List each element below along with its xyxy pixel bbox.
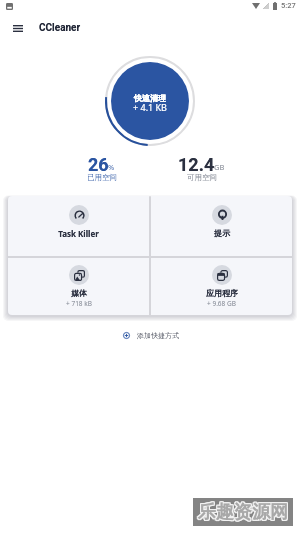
staticText: 乐趣资源网 — [197, 502, 287, 525]
staticText: 乐趣资源网 — [199, 501, 289, 524]
staticText: 媒体 — [71, 288, 87, 298]
staticText: 乐趣资源网 — [197, 500, 287, 523]
staticText: 乐趣资源网 — [198, 500, 288, 523]
staticText: 26 — [88, 154, 109, 175]
staticText: Task Killer — [58, 228, 99, 239]
staticText: 乐趣资源网 — [198, 501, 288, 524]
staticText: 提示 — [214, 228, 230, 238]
staticText: 乐趣资源网 — [199, 502, 289, 525]
staticText: 乐趣资源网 — [198, 502, 288, 525]
button[interactable]: 添加快捷方式 — [115, 326, 187, 345]
staticText: CCleaner — [39, 22, 81, 34]
staticText: 12.4 — [178, 154, 215, 175]
staticText: 乐趣资源网 — [199, 500, 289, 523]
button[interactable]: 提示 — [151, 196, 292, 256]
staticText: 5:27 — [281, 1, 296, 10]
button[interactable]: 媒体 — [8, 258, 149, 315]
staticText: % — [108, 162, 115, 172]
staticText: 快速清理 — [134, 93, 166, 103]
staticText: 快速清理 — [134, 93, 166, 103]
staticText: 添加快捷方式 — [137, 331, 179, 340]
staticText: + 718 kB — [66, 299, 92, 308]
button[interactable]: 快速清理 — [111, 62, 189, 140]
button[interactable]: 应用程序 — [151, 258, 292, 315]
staticText: 乐趣资源网 — [197, 501, 287, 524]
staticText: 26 — [88, 154, 109, 175]
staticText: CCleaner — [39, 22, 81, 34]
staticText: GB — [214, 162, 225, 172]
staticText: 可用空间 — [187, 173, 217, 182]
button[interactable]: Menu — [7, 17, 29, 39]
staticText: + 9.68 GB — [207, 299, 236, 308]
staticText: + 4.1 KB — [133, 101, 167, 113]
staticText: 12.4 — [178, 154, 215, 175]
button[interactable]: Task Killer — [8, 196, 149, 256]
staticText: 应用程序 — [206, 288, 238, 298]
staticText: 提示 — [214, 228, 230, 238]
staticText: 已用空间 — [87, 173, 117, 182]
staticText: Task Killer — [58, 228, 99, 239]
staticText: 应用程序 — [206, 288, 238, 298]
staticText: 媒体 — [71, 288, 87, 298]
